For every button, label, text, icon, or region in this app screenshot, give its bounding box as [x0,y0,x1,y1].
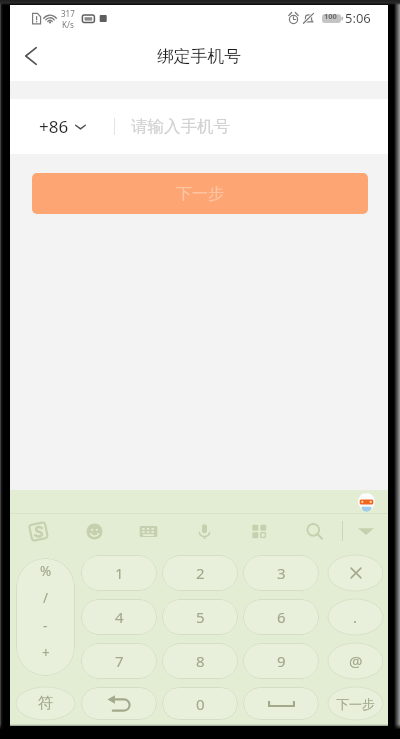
staticText: % [40,562,52,580]
staticText: + [42,644,50,662]
staticText: K/s [62,19,74,30]
staticText: 绑定手机号 [157,46,241,67]
staticText: 5:06 [345,9,371,27]
staticText: 1 [115,563,124,583]
button[interactable]: 6 [243,599,319,635]
staticText: - [43,617,48,635]
button[interactable]: Emoji [79,509,109,553]
staticText: 符 [38,694,53,713]
staticText: 3 [277,563,286,583]
button[interactable]: 3 [243,555,319,591]
staticText: 5 [196,607,205,627]
button[interactable]: +86 [36,99,92,154]
staticText: / [43,589,49,607]
button[interactable]: % [16,558,75,584]
button[interactable]: More tools [244,509,274,553]
staticText: @ [349,651,363,671]
button[interactable]: 2 [162,555,238,591]
button[interactable]: 下一步 [328,687,383,720]
button[interactable]: 4 [81,599,157,635]
button[interactable]: 9 [243,643,319,679]
button[interactable]: Hide keyboard [351,509,381,553]
button[interactable]: Back [12,37,50,75]
staticText: 0 [196,694,205,714]
staticText: 下一步 [176,184,224,204]
button[interactable]: Space [243,687,319,720]
staticText: 317 [61,8,75,19]
button[interactable]: . [328,599,383,635]
staticText: 8 [196,651,205,671]
staticText: 100 [324,11,337,21]
staticText: 请输入手机号 [131,116,230,137]
button[interactable]: 0 [162,687,238,720]
staticText: +86 [39,115,69,138]
staticText: . [353,607,358,627]
button[interactable]: 8 [162,643,238,679]
staticText: 6 [277,607,286,627]
button[interactable]: Backspace [81,687,157,720]
button[interactable]: Profile [357,492,376,511]
button[interactable]: 符 [16,687,75,720]
button[interactable]: - [16,613,75,639]
button[interactable]: 1 [81,555,157,591]
button[interactable]: Search [299,509,329,553]
button[interactable]: 7 [81,643,157,679]
staticText: 2 [196,563,205,583]
staticText: 4 [115,607,124,627]
staticText: 9 [277,651,286,671]
button[interactable]: Keyboard layout [133,509,163,553]
button[interactable]: / [16,585,75,611]
button[interactable] [328,555,383,591]
staticText: 下一步 [336,696,375,712]
button[interactable]: + [16,640,75,666]
staticText: 7 [115,651,124,671]
button[interactable]: Input method settings [23,509,53,553]
button[interactable]: Voice input [189,509,219,553]
button[interactable]: 5 [162,599,238,635]
button[interactable]: 下一步 [32,173,368,214]
button[interactable]: @ [328,643,383,679]
